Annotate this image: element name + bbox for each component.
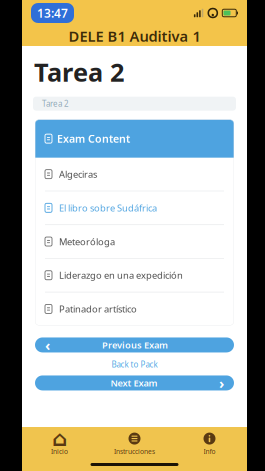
- staticText: Patinador artístico: [59, 303, 137, 315]
- staticText: Instrucciones: [114, 447, 155, 456]
- staticText: Back to Pack: [111, 359, 157, 370]
- button[interactable]: Patinador artístico: [35, 292, 234, 325]
- staticText: Exam Content: [57, 132, 130, 146]
- button[interactable]: ⌂: [22, 432, 97, 456]
- staticText: Next Exam: [110, 377, 157, 389]
- staticText: Previous Exam: [102, 339, 168, 351]
- staticText: Inicio: [51, 447, 68, 456]
- button[interactable]: El libro sobre Sudáfrica: [35, 191, 234, 224]
- staticText: [45, 373, 49, 393]
- staticText: [220, 335, 224, 355]
- staticText: ›: [219, 373, 224, 393]
- staticText: 13:47: [37, 5, 68, 21]
- button[interactable]: Back to Pack: [22, 357, 247, 371]
- staticText: Meteoróloga: [59, 235, 115, 248]
- button[interactable]: Meteoróloga: [35, 225, 234, 258]
- button[interactable]: Instrucciones: [97, 432, 172, 456]
- button[interactable]: ‹: [35, 337, 234, 352]
- staticText: Tarea 2: [42, 98, 69, 109]
- staticText: DELE B1 Auditiva 1: [68, 26, 200, 46]
- staticText: ‹: [45, 335, 50, 355]
- staticText: El libro sobre Sudáfrica: [59, 202, 157, 214]
- staticText: Info: [203, 447, 215, 456]
- staticText: ⌂: [52, 426, 67, 451]
- staticText: Tarea 2: [34, 55, 124, 89]
- button[interactable]: Info: [172, 432, 247, 456]
- button[interactable]: Liderazgo en una expedición: [35, 259, 234, 292]
- button[interactable]: Algeciras: [35, 158, 234, 191]
- staticText: Algeciras: [59, 168, 97, 180]
- staticText: Liderazgo en una expedición: [59, 269, 183, 281]
- button[interactable]: [35, 375, 234, 390]
